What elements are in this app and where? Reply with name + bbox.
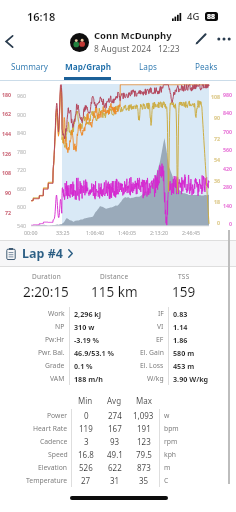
staticText: Speed — [48, 450, 68, 459]
staticText: 900 — [17, 111, 27, 118]
button[interactable]: Map/Graph — [59, 55, 118, 77]
staticText: 580 m — [173, 348, 195, 358]
staticText: 90 — [214, 114, 221, 121]
staticText: 840 — [17, 129, 27, 136]
staticText: 280 — [223, 183, 233, 190]
staticText: 960 — [17, 92, 27, 99]
button[interactable]: More options — [212, 26, 236, 52]
staticText: 159 — [172, 283, 196, 301]
staticText: IF — [158, 309, 164, 318]
staticText: 18 — [214, 198, 221, 205]
staticText: TSS — [178, 272, 190, 281]
staticText: 0.83 — [173, 309, 188, 319]
staticText: 12:23 — [158, 43, 180, 55]
staticText: 36 — [214, 177, 221, 184]
staticText: 0 — [217, 219, 221, 226]
staticText: Peaks — [195, 61, 218, 72]
staticText: 660 — [17, 185, 27, 192]
button[interactable]: Back — [0, 28, 20, 54]
staticText: Pw:Hr — [45, 335, 65, 344]
staticText: 00:00 — [24, 229, 38, 236]
staticText: Work — [48, 309, 65, 318]
staticText: 540 — [17, 222, 27, 229]
button[interactable]: Peaks — [177, 55, 236, 77]
staticText: 126 — [2, 150, 12, 157]
button[interactable]: Lap #4 — [0, 241, 236, 266]
staticText: 188 m/h — [74, 374, 103, 384]
staticText: Power — [47, 411, 68, 420]
staticText: 27 — [81, 475, 91, 486]
staticText: 840 — [223, 109, 233, 116]
staticText: 162 — [2, 110, 12, 117]
staticText: Conn McDunphy — [94, 29, 172, 42]
staticText: 1.14 — [173, 322, 188, 332]
staticText: 33:25 — [56, 229, 70, 236]
staticText: 108 — [2, 169, 12, 176]
staticText: rpm — [164, 437, 178, 446]
staticText: 2,296 kJ — [74, 309, 102, 319]
staticText: 123 — [137, 436, 151, 447]
staticText: 873 — [137, 462, 151, 473]
staticText: El. Loss — [140, 361, 164, 370]
staticText: 780 — [17, 148, 27, 155]
staticText: W/kg — [147, 374, 164, 383]
staticText: 191 — [137, 423, 151, 434]
button[interactable]: Laps — [118, 55, 177, 77]
staticText: Pwr. Bal. — [38, 348, 65, 357]
button[interactable]: Edit — [190, 26, 212, 52]
staticText: w — [164, 411, 170, 420]
staticText: 0 — [84, 410, 89, 421]
staticText: 2:20:15 — [23, 283, 69, 301]
staticText: 0.1 % — [74, 361, 93, 371]
staticText: 144 — [2, 130, 12, 137]
staticText: 93 — [110, 436, 120, 447]
staticText: Min — [78, 395, 93, 406]
staticText: 420 — [223, 165, 233, 172]
staticText: 526 — [79, 462, 93, 473]
staticText: Cadence — [40, 437, 68, 446]
staticText: 2:13:20 — [150, 229, 168, 236]
staticText: 31 — [110, 475, 120, 486]
staticText: Avg — [107, 395, 122, 406]
staticText: 8 August 2024 — [94, 43, 152, 55]
staticText: 1,093 — [133, 410, 154, 421]
staticText: NP — [55, 322, 65, 331]
staticText: Heart Rate — [33, 424, 68, 433]
staticText: 108 — [211, 93, 221, 100]
staticText: 453 m — [173, 361, 195, 371]
staticText: 180 — [2, 91, 12, 98]
staticText: 115 km — [91, 283, 138, 301]
staticText: 4G — [187, 10, 200, 23]
staticText: EF — [156, 335, 164, 344]
staticText: kph — [164, 450, 177, 459]
staticText: 140 — [223, 202, 233, 209]
staticText: Temperature — [26, 476, 68, 485]
staticText: Elevation — [38, 463, 68, 472]
staticText: El. Gain — [140, 348, 164, 357]
staticText: 119 — [79, 423, 93, 434]
staticText: 46.9/53.1 % — [74, 348, 115, 358]
staticText: 2:46:45 — [182, 229, 200, 236]
staticText: Lap #4 — [22, 245, 63, 262]
staticText: Map/Graph — [65, 61, 112, 72]
staticText: 600 — [17, 203, 27, 210]
staticText: 622 — [108, 462, 122, 473]
staticText: 3.90 W/kg — [173, 374, 209, 384]
staticText: 54 — [214, 156, 221, 163]
staticText: 274 — [108, 410, 122, 421]
staticText: 79.5 — [136, 449, 152, 460]
staticText: 88 — [207, 12, 216, 21]
staticText: VI — [157, 322, 164, 331]
staticText: 700 — [223, 128, 233, 135]
staticText: C — [164, 476, 169, 485]
staticText: Duration — [32, 272, 61, 281]
staticText: 1.86 — [173, 335, 188, 345]
staticText: -3.19 % — [74, 335, 100, 345]
staticText: Distance — [100, 272, 129, 281]
staticText: Summary — [11, 61, 49, 72]
staticText: 72 — [214, 135, 221, 142]
staticText: 72 — [5, 209, 12, 216]
staticText: 1:40:05 — [118, 229, 136, 236]
staticText: m — [164, 463, 171, 472]
button[interactable]: Summary — [0, 55, 59, 77]
